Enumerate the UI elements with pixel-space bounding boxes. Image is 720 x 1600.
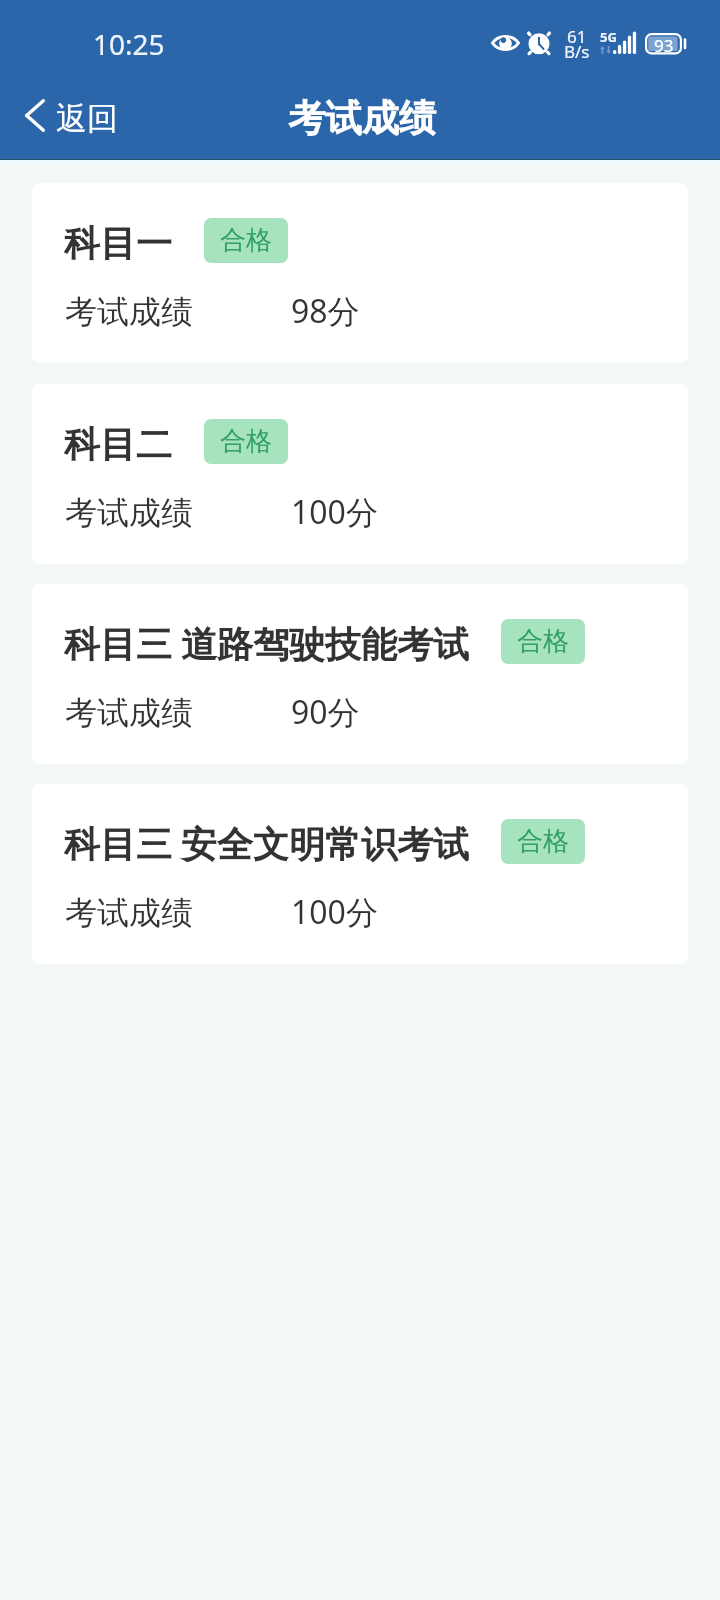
staticText: 93 (654, 34, 674, 57)
button[interactable]: 科目三 (32, 584, 688, 764)
staticText: 科目三 (64, 820, 172, 870)
staticText: 合格 (517, 825, 569, 858)
staticText: B/s (564, 40, 590, 63)
staticText: 合格 (220, 425, 272, 458)
button[interactable]: 科目一 (32, 183, 688, 363)
staticText: 61 (567, 25, 587, 48)
staticText: 90分 (291, 689, 360, 735)
staticText: 考试成绩 (65, 691, 193, 735)
staticText: 5G (600, 28, 617, 46)
staticText: 考试成绩 (65, 491, 193, 535)
staticText: 100分 (291, 489, 378, 535)
staticText: 科目一 (64, 219, 172, 269)
staticText: 考试成绩 (65, 290, 193, 334)
staticText: 考试成绩 (65, 891, 193, 935)
staticText: 合格 (517, 625, 569, 658)
staticText: 10:25 (93, 25, 165, 63)
staticText: 安全文明常识考试 (181, 820, 469, 870)
staticText: 道路驾驶技能考试 (181, 620, 469, 670)
staticText: 返回 (56, 99, 118, 138)
staticText: 合格 (220, 224, 272, 257)
staticText: 考试成绩 (288, 95, 436, 142)
staticText: 98分 (291, 288, 360, 334)
staticText: 科目三 (64, 620, 172, 670)
button[interactable]: 科目三 (32, 784, 688, 964)
staticText: 科目二 (64, 420, 172, 470)
button[interactable]: 科目二 (32, 384, 688, 564)
button[interactable]: 返回 (0, 88, 135, 143)
staticText: 100分 (291, 889, 378, 935)
